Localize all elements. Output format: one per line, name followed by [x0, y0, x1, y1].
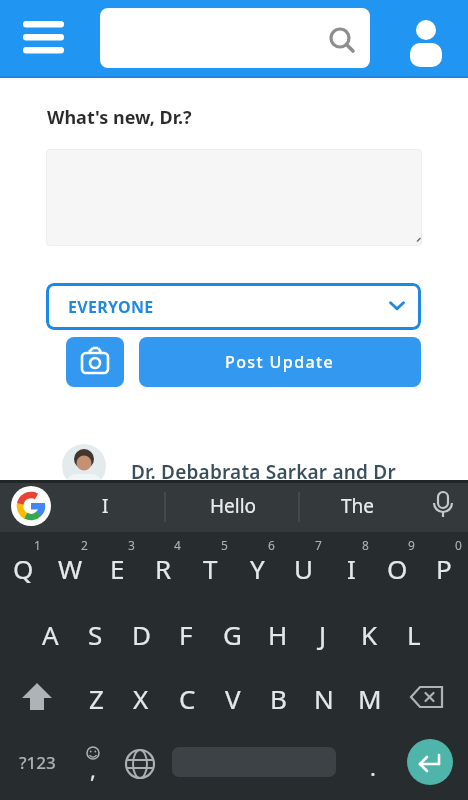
staticText: C: [179, 681, 196, 716]
button[interactable]: [118, 742, 162, 786]
staticText: EVERYONE: [68, 296, 154, 318]
button[interactable]: Z: [0, 480, 44, 524]
button[interactable]: L: [0, 480, 44, 524]
staticText: Z: [89, 681, 104, 716]
staticText: K: [361, 617, 378, 652]
staticText: W: [58, 551, 83, 586]
button[interactable]: H: [0, 480, 44, 524]
staticText: I: [102, 493, 109, 519]
button[interactable]: N: [0, 480, 44, 524]
button[interactable]: [407, 739, 453, 785]
staticText: J: [319, 617, 327, 652]
button[interactable]: T: [0, 480, 44, 524]
button[interactable]: EVERYONE: [46, 283, 421, 330]
button[interactable]: [14, 676, 60, 720]
button[interactable]: Hello: [0, 480, 80, 514]
staticText: 3: [128, 537, 135, 553]
button[interactable]: [404, 676, 450, 720]
staticText: N: [314, 681, 334, 716]
staticText: F: [179, 617, 193, 652]
button[interactable]: G: [0, 480, 44, 524]
button[interactable]: B: [0, 480, 44, 524]
button[interactable]: U: [0, 480, 44, 524]
button[interactable]: F: [0, 480, 44, 524]
staticText: I: [347, 551, 356, 586]
button[interactable]: I: [0, 480, 60, 514]
button[interactable]: [100, 8, 370, 68]
staticText: .: [370, 752, 376, 782]
button[interactable]: [16, 12, 70, 64]
staticText: O: [387, 551, 408, 586]
staticText: ,: [90, 754, 96, 784]
staticText: D: [132, 617, 151, 652]
staticText: 5: [221, 537, 228, 553]
button[interactable]: P: [0, 480, 44, 524]
button[interactable]: Y: [0, 480, 44, 524]
staticText: 7: [315, 537, 322, 553]
staticText: P: [436, 551, 452, 586]
staticText: M: [358, 681, 382, 716]
staticText: 0: [455, 537, 462, 553]
staticText: The: [341, 493, 375, 519]
staticText: V: [225, 681, 241, 716]
staticText: What's new, Dr.?: [47, 105, 192, 130]
staticText: 6: [268, 537, 275, 553]
staticText: Y: [250, 551, 265, 586]
staticText: 9: [408, 537, 415, 553]
staticText: B: [270, 681, 287, 716]
button[interactable]: W: [0, 480, 44, 524]
staticText: E: [110, 551, 125, 586]
staticText: 8: [362, 537, 369, 553]
staticText: G: [223, 617, 242, 652]
staticText: R: [155, 551, 172, 586]
button[interactable]: [425, 488, 461, 524]
staticText: 2: [81, 537, 88, 553]
button[interactable]: I: [0, 480, 44, 524]
button[interactable]: E: [0, 480, 44, 524]
button[interactable]: [66, 337, 124, 387]
button[interactable]: M: [0, 480, 44, 524]
staticText: T: [203, 551, 218, 586]
button[interactable]: X: [0, 480, 44, 524]
button[interactable]: J: [0, 480, 44, 524]
button[interactable]: Post Update: [139, 337, 421, 387]
staticText: Post Update: [225, 351, 335, 373]
button[interactable]: ,: [72, 740, 116, 784]
staticText: 4: [174, 537, 181, 553]
staticText: Dr. Debabrata Sarkar and Dr: [131, 459, 396, 485]
staticText: 1: [34, 537, 41, 553]
button[interactable]: The: [0, 480, 70, 514]
button[interactable]: .: [0, 480, 30, 516]
staticText: H: [268, 617, 288, 652]
staticText: Hello: [210, 493, 257, 519]
staticText: X: [133, 681, 149, 716]
staticText: U: [294, 551, 314, 586]
staticText: Q: [13, 551, 34, 586]
button[interactable]: R: [0, 480, 44, 524]
button[interactable]: Q: [0, 480, 44, 524]
staticText: A: [42, 617, 59, 652]
button[interactable]: S: [0, 480, 44, 524]
staticText: L: [407, 617, 421, 652]
button[interactable]: O: [0, 480, 44, 524]
button[interactable]: D: [0, 480, 44, 524]
button[interactable]: V: [0, 480, 44, 524]
button[interactable]: ?123: [0, 480, 56, 520]
button[interactable]: K: [0, 480, 44, 524]
button[interactable]: [11, 486, 51, 526]
staticText: ?123: [19, 751, 56, 774]
button[interactable]: C: [0, 480, 44, 524]
staticText: S: [88, 617, 103, 652]
button[interactable]: [402, 8, 450, 68]
button[interactable]: A: [0, 480, 44, 524]
